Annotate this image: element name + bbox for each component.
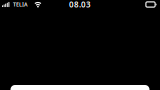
- staticText: TELIA: [13, 1, 28, 8]
- staticText: 08.03: [69, 0, 91, 10]
